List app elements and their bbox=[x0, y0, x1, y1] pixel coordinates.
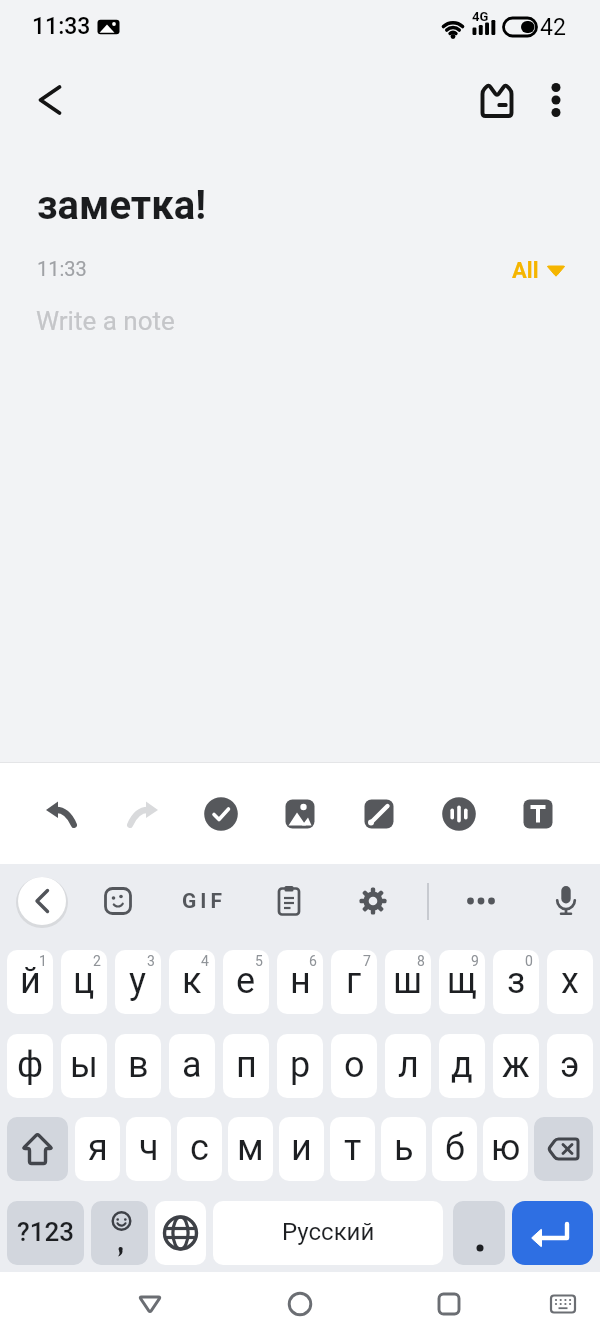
button[interactable] bbox=[155, 1201, 206, 1265]
button[interactable]: ж bbox=[493, 1034, 539, 1098]
button[interactable] bbox=[544, 260, 568, 282]
button[interactable] bbox=[512, 1201, 593, 1265]
button[interactable] bbox=[472, 17, 498, 37]
button[interactable] bbox=[534, 1117, 593, 1181]
button[interactable] bbox=[458, 889, 504, 913]
button[interactable] bbox=[32, 82, 68, 118]
staticText: 0 bbox=[525, 953, 533, 969]
button[interactable]: к bbox=[169, 950, 215, 1014]
button[interactable]: д bbox=[439, 1034, 485, 1098]
staticText: 11:33 bbox=[37, 257, 87, 280]
staticText: х bbox=[561, 960, 579, 1002]
button[interactable] bbox=[534, 1117, 593, 1181]
staticText: 5 bbox=[255, 953, 263, 969]
staticText: GIF bbox=[182, 889, 226, 914]
button[interactable]: ч bbox=[126, 1117, 171, 1181]
button[interactable] bbox=[453, 1201, 505, 1265]
staticText: 8 bbox=[417, 953, 425, 969]
button[interactable] bbox=[362, 797, 396, 831]
button[interactable] bbox=[285, 1290, 315, 1318]
staticText: 3 bbox=[147, 953, 155, 969]
staticText: заметка! bbox=[37, 182, 207, 229]
button[interactable] bbox=[478, 81, 516, 119]
button[interactable]: н bbox=[277, 950, 323, 1014]
button[interactable]: ?123 bbox=[7, 1201, 84, 1265]
button[interactable] bbox=[283, 797, 317, 831]
button[interactable]: х bbox=[547, 950, 593, 1014]
staticText: э bbox=[560, 1044, 580, 1086]
button[interactable]: е bbox=[223, 950, 269, 1014]
button[interactable]: л bbox=[385, 1034, 431, 1098]
staticText: у bbox=[129, 960, 147, 1002]
staticText: 4G bbox=[472, 9, 489, 24]
button[interactable]: б bbox=[432, 1117, 477, 1181]
button[interactable]: ф bbox=[7, 1034, 53, 1098]
button[interactable]: я bbox=[75, 1117, 120, 1181]
staticText: д bbox=[451, 1044, 473, 1086]
button[interactable]: о bbox=[331, 1034, 377, 1098]
staticText: ч bbox=[139, 1127, 159, 1169]
button[interactable] bbox=[155, 1201, 206, 1265]
button[interactable]: ю bbox=[483, 1117, 528, 1181]
button[interactable] bbox=[7, 1117, 68, 1181]
staticText: я bbox=[88, 1127, 108, 1169]
button[interactable] bbox=[91, 1201, 148, 1265]
button[interactable]: т bbox=[330, 1117, 375, 1181]
staticText: ы bbox=[70, 1044, 98, 1086]
staticText: в bbox=[128, 1044, 149, 1086]
button[interactable]: ш bbox=[385, 950, 431, 1014]
staticText: о bbox=[344, 1044, 365, 1086]
button[interactable] bbox=[18, 877, 66, 925]
button[interactable] bbox=[359, 887, 387, 915]
button[interactable] bbox=[275, 885, 303, 917]
button[interactable]: ц bbox=[61, 950, 107, 1014]
button[interactable]: у bbox=[115, 950, 161, 1014]
button[interactable] bbox=[521, 797, 555, 831]
staticText: к bbox=[182, 960, 202, 1002]
button[interactable] bbox=[552, 884, 580, 918]
button[interactable] bbox=[503, 16, 537, 38]
button[interactable] bbox=[7, 1117, 68, 1181]
staticText: е bbox=[236, 960, 256, 1002]
button[interactable] bbox=[453, 1201, 505, 1265]
button[interactable] bbox=[91, 1201, 148, 1265]
button[interactable]: й bbox=[7, 950, 53, 1014]
staticText: ь bbox=[394, 1127, 414, 1169]
button[interactable]: м bbox=[228, 1117, 273, 1181]
staticText: и bbox=[291, 1127, 312, 1169]
button[interactable]: Русский bbox=[213, 1201, 443, 1265]
staticText: м bbox=[237, 1127, 264, 1169]
button[interactable] bbox=[125, 797, 159, 831]
button[interactable] bbox=[97, 19, 120, 35]
button[interactable] bbox=[542, 82, 570, 118]
staticText: 1 bbox=[39, 953, 47, 969]
button[interactable] bbox=[442, 797, 476, 831]
button[interactable] bbox=[104, 887, 132, 915]
staticText: л bbox=[398, 1044, 419, 1086]
staticText: All bbox=[512, 258, 539, 284]
button[interactable] bbox=[548, 1292, 578, 1316]
staticText: з bbox=[507, 960, 526, 1002]
button[interactable]: ы bbox=[61, 1034, 107, 1098]
button[interactable]: г bbox=[331, 950, 377, 1014]
staticText: ж bbox=[502, 1044, 530, 1086]
button[interactable]: р bbox=[277, 1034, 323, 1098]
button[interactable] bbox=[204, 797, 238, 831]
button[interactable] bbox=[512, 1201, 593, 1265]
button[interactable]: п bbox=[223, 1034, 269, 1098]
button[interactable]: э bbox=[547, 1034, 593, 1098]
button[interactable] bbox=[45, 797, 79, 831]
staticText: п bbox=[236, 1044, 257, 1086]
button[interactable]: GIF bbox=[180, 886, 228, 916]
button[interactable] bbox=[434, 1290, 464, 1318]
button[interactable]: и bbox=[279, 1117, 324, 1181]
button[interactable]: с bbox=[177, 1117, 222, 1181]
button[interactable]: ь bbox=[381, 1117, 426, 1181]
button[interactable]: в bbox=[115, 1034, 161, 1098]
button[interactable] bbox=[135, 1290, 165, 1318]
button[interactable] bbox=[441, 14, 465, 38]
staticText: 6 bbox=[309, 953, 317, 969]
button[interactable]: з bbox=[493, 950, 539, 1014]
button[interactable]: щ bbox=[439, 950, 485, 1014]
button[interactable]: а bbox=[169, 1034, 215, 1098]
